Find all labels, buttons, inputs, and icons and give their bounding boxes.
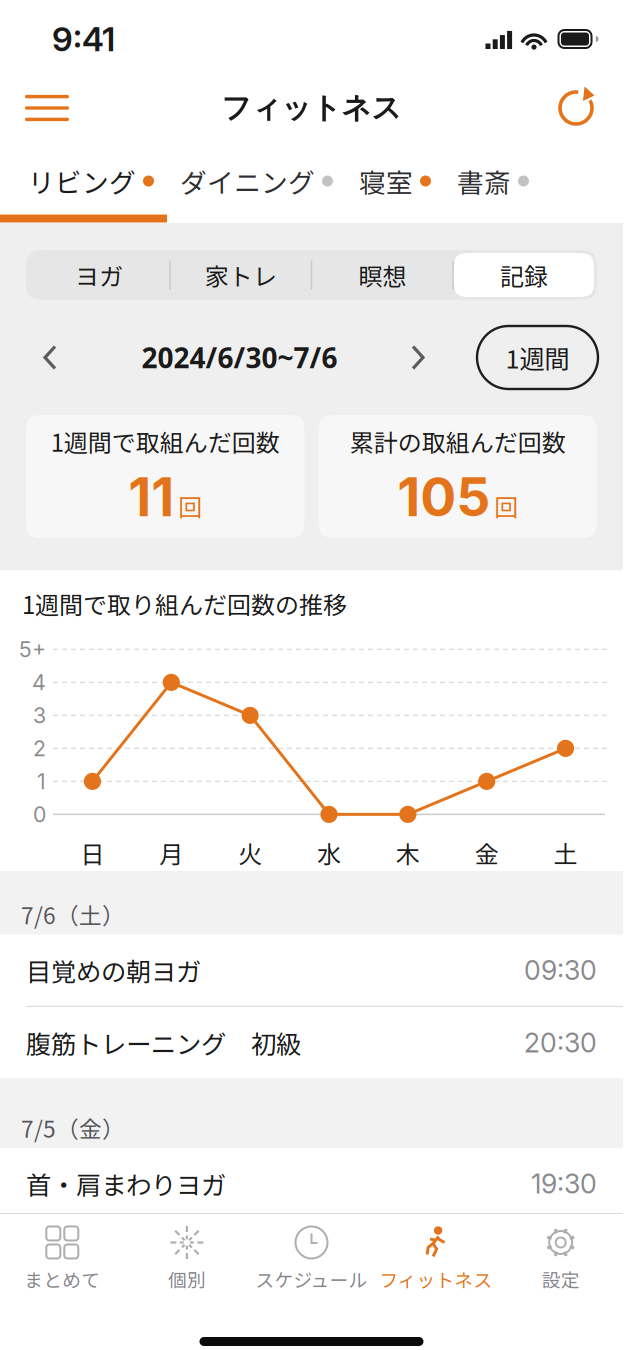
button[interactable]: フィットネス bbox=[374, 1214, 498, 1302]
button[interactable]: Refresh bbox=[541, 76, 611, 140]
button[interactable]: 瞑想 bbox=[312, 253, 452, 297]
staticText: まとめて bbox=[24, 1265, 100, 1292]
staticText: フィットネス bbox=[380, 1265, 493, 1292]
button[interactable]: 家トレ bbox=[171, 253, 311, 297]
staticText: 火 bbox=[238, 835, 262, 870]
staticText: フィットネス bbox=[221, 89, 401, 126]
button[interactable]: 寝室 bbox=[359, 150, 457, 212]
button[interactable]: ヨガ bbox=[29, 253, 169, 297]
staticText: 寝室 bbox=[359, 162, 413, 200]
staticText: 水 bbox=[317, 835, 341, 870]
button[interactable]: Menu bbox=[12, 76, 82, 140]
button[interactable]: 記録 bbox=[454, 253, 594, 297]
staticText: 1週間で取組んだ回数 bbox=[51, 424, 280, 459]
staticText: 書斎 bbox=[457, 162, 511, 200]
button[interactable]: 首・肩まわりヨガ bbox=[0, 1148, 623, 1219]
button[interactable]: 個別 bbox=[125, 1214, 249, 1302]
staticText: 9:41 bbox=[52, 19, 115, 59]
button[interactable]: Next week bbox=[401, 329, 435, 385]
button[interactable]: Previous week bbox=[22, 329, 78, 385]
staticText: ヨガ bbox=[75, 258, 123, 292]
button[interactable]: スケジュール bbox=[249, 1214, 374, 1302]
staticText: 首・肩まわりヨガ bbox=[26, 1165, 226, 1202]
button[interactable]: 設定 bbox=[498, 1214, 623, 1302]
staticText: 回 bbox=[178, 488, 202, 523]
staticText: 回 bbox=[494, 488, 518, 523]
staticText: 11 bbox=[128, 465, 174, 529]
staticText: 1週間で取り組んだ回数の推移 bbox=[22, 586, 347, 621]
staticText: 個別 bbox=[168, 1265, 206, 1292]
staticText: 木 bbox=[396, 835, 420, 870]
staticText: 7/5（金） bbox=[21, 1111, 125, 1144]
staticText: 4 bbox=[32, 669, 46, 695]
staticText: 1週間 bbox=[505, 339, 569, 376]
staticText: 日 bbox=[80, 835, 104, 870]
staticText: 1 bbox=[37, 768, 46, 794]
staticText: 記録 bbox=[500, 258, 548, 292]
button[interactable]: 1週間 bbox=[477, 326, 598, 389]
staticText: 累計の取組んだ回数 bbox=[350, 424, 566, 459]
staticText: ダイニング bbox=[180, 162, 315, 200]
staticText: 09:30 bbox=[524, 954, 597, 986]
staticText: 2 bbox=[33, 735, 46, 761]
staticText: 土 bbox=[554, 835, 578, 870]
button[interactable]: 書斎 bbox=[457, 150, 555, 212]
staticText: 家トレ bbox=[205, 258, 277, 292]
staticText: スケジュール bbox=[255, 1265, 367, 1292]
staticText: 瞑想 bbox=[358, 258, 406, 292]
button[interactable]: 目覚めの朝ヨガ bbox=[0, 935, 623, 1006]
staticText: リビング bbox=[28, 162, 136, 200]
staticText: 20:30 bbox=[524, 1027, 597, 1059]
staticText: 7/6（土） bbox=[21, 898, 125, 931]
button[interactable]: まとめて bbox=[0, 1214, 125, 1302]
staticText: 105 bbox=[397, 465, 490, 529]
staticText: 設定 bbox=[542, 1265, 580, 1292]
staticText: 5+ bbox=[19, 636, 46, 662]
staticText: 19:30 bbox=[531, 1168, 597, 1200]
staticText: 目覚めの朝ヨガ bbox=[26, 952, 201, 989]
staticText: 2024/6/30~7/6 bbox=[141, 338, 337, 376]
button[interactable]: ダイニング bbox=[180, 150, 359, 212]
staticText: 3 bbox=[33, 702, 46, 728]
staticText: 0 bbox=[33, 801, 46, 827]
button[interactable]: リビング bbox=[28, 150, 180, 212]
staticText: 腹筋トレーニング 初級 bbox=[26, 1024, 301, 1061]
button[interactable]: 腹筋トレーニング 初級 bbox=[0, 1007, 623, 1078]
staticText: 月 bbox=[159, 835, 183, 870]
staticText: 金 bbox=[475, 835, 499, 870]
